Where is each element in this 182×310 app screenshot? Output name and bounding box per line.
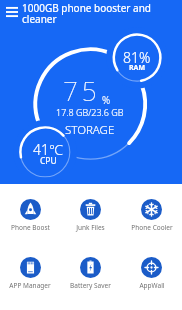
- staticText: %: [102, 93, 111, 107]
- staticText: Phone Cooler: [131, 223, 173, 232]
- button[interactable]: Phone Boost: [0, 196, 60, 235]
- staticText: RAM: [129, 63, 146, 73]
- button[interactable]: APP Manager: [0, 254, 60, 293]
- staticText: Battery Saver: [70, 281, 111, 290]
- staticText: 1000GB phone booster and cleaner: [22, 1, 154, 26]
- button[interactable]: AppWall: [121, 254, 182, 293]
- staticText: Junk Files: [76, 223, 105, 232]
- button[interactable]: Battery Saver: [60, 254, 121, 293]
- staticText: 41℃: [33, 140, 63, 159]
- staticText: 17.8 GB/23.6 GB: [56, 106, 124, 118]
- staticText: AppWall: [139, 281, 165, 290]
- staticText: 75: [63, 73, 101, 108]
- button[interactable]: Junk Files: [60, 196, 121, 235]
- button[interactable]: Open navigation menu: [1, 2, 23, 24]
- staticText: STORAGE: [65, 122, 115, 138]
- staticText: 81%: [123, 48, 151, 67]
- staticText: Phone Boost: [11, 223, 50, 232]
- staticText: APP Manager: [9, 281, 51, 290]
- button[interactable]: Phone Cooler: [121, 196, 182, 235]
- staticText: CPU: [40, 155, 57, 167]
